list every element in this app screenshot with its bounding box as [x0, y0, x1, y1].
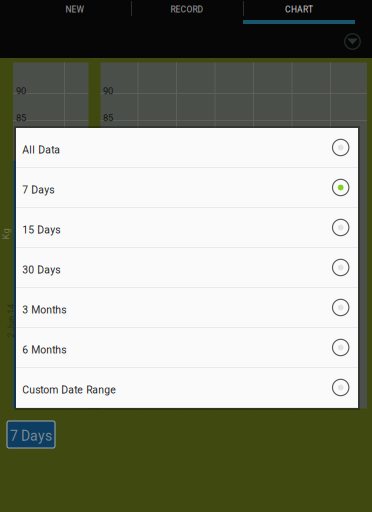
- staticText: CHART: [285, 4, 313, 14]
- staticText: 3 Months: [22, 304, 66, 316]
- staticText: NEW: [65, 4, 84, 14]
- staticText: 90: [103, 85, 113, 96]
- staticText: 30 Days: [22, 264, 60, 276]
- staticText: 85: [16, 112, 26, 123]
- button[interactable]: NEW: [19, 0, 131, 28]
- button[interactable]: Chart range options: [340, 29, 365, 54]
- button[interactable]: Custom Date Range: [16, 368, 358, 407]
- button[interactable]: 30 Days: [16, 248, 358, 287]
- staticText: 90: [16, 85, 26, 96]
- staticText: Kg: [0, 228, 11, 239]
- button[interactable]: 15 Days: [16, 208, 358, 247]
- staticText: 6 Months: [22, 344, 66, 356]
- staticText: 2 Jun 14: [0, 315, 28, 326]
- button[interactable]: RECORD: [131, 0, 243, 28]
- button[interactable]: All Data: [16, 128, 358, 167]
- staticText: All Data: [22, 144, 60, 156]
- button[interactable]: CHART: [243, 0, 355, 28]
- staticText: 15 Days: [22, 224, 60, 236]
- button[interactable]: 3 Months: [16, 288, 358, 327]
- staticText: RECORD: [170, 4, 203, 14]
- staticText: 7 Days: [10, 428, 52, 444]
- button[interactable]: 7 Days: [16, 168, 358, 207]
- button[interactable]: 7 Days: [7, 421, 55, 448]
- staticText: 7 Days: [22, 184, 54, 196]
- staticText: Custom Date Range: [22, 384, 116, 396]
- staticText: 85: [103, 112, 113, 123]
- button[interactable]: 6 Months: [16, 328, 358, 367]
